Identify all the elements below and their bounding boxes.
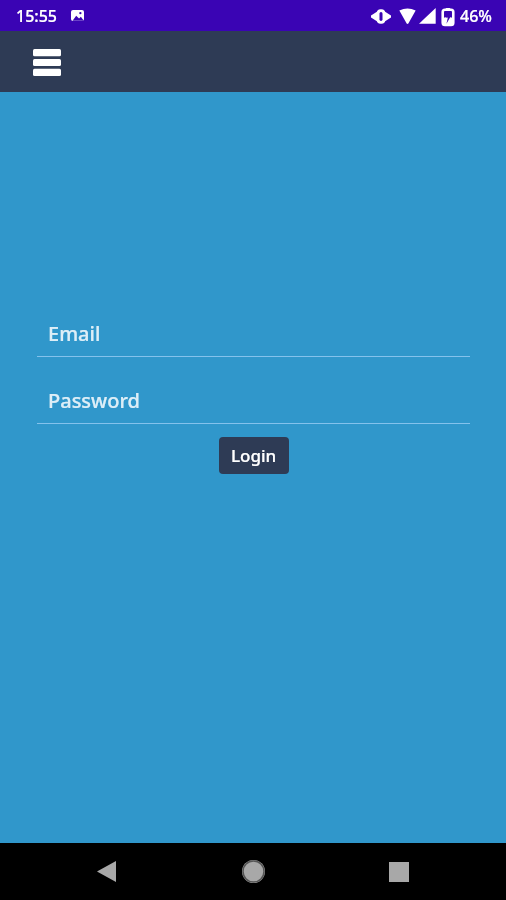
button[interactable]: Open navigation menu xyxy=(23,38,71,86)
button[interactable]: Back xyxy=(76,843,136,900)
staticText: Password xyxy=(48,387,140,414)
button[interactable]: Recent apps xyxy=(369,843,429,900)
button[interactable]: Password xyxy=(37,387,470,424)
button[interactable]: Home xyxy=(223,843,283,900)
staticText: Login xyxy=(231,444,277,467)
button[interactable]: Login xyxy=(219,437,289,474)
staticText: 46% xyxy=(460,5,492,27)
staticText: 15:55 xyxy=(16,5,57,27)
button[interactable]: Email xyxy=(37,320,470,357)
staticText: Email xyxy=(48,320,101,347)
